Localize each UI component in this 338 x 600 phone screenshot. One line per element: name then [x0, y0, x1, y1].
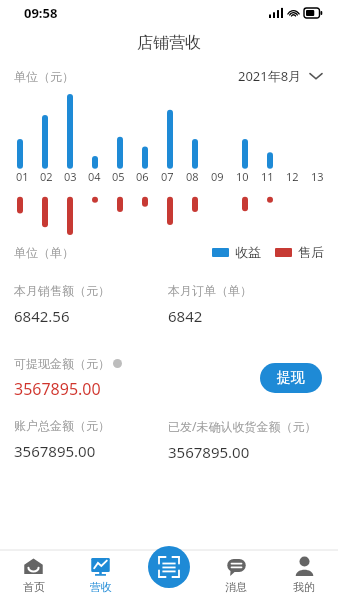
staticText: 收益 — [235, 244, 261, 260]
staticText: 04 — [88, 169, 101, 184]
staticText: 03 — [64, 169, 77, 184]
staticText: 售后 — [298, 244, 324, 260]
staticText: 3567895.00 — [168, 442, 250, 462]
staticText: 09 — [211, 169, 224, 184]
staticText: 消息 — [225, 580, 247, 594]
staticText: 07 — [161, 169, 174, 184]
staticText: 6842.56 — [14, 306, 70, 326]
staticText: 01 — [16, 169, 29, 184]
staticText: 已发/未确认收货金额（元） — [168, 418, 317, 434]
staticText: 06 — [136, 169, 149, 184]
staticText: 单位（单） — [14, 245, 74, 260]
staticText: 02 — [40, 169, 53, 184]
staticText: 首页 — [23, 580, 45, 594]
staticText: 08 — [186, 169, 199, 184]
button[interactable]: 营收 — [67, 550, 134, 600]
button[interactable]: 提现 — [260, 363, 322, 393]
staticText: 账户总金额（元） — [14, 418, 110, 433]
button[interactable]: 我的 — [270, 550, 338, 600]
staticText: 本月订单（单） — [168, 283, 252, 298]
button[interactable]: 扫一扫 — [148, 546, 190, 588]
staticText: 本月销售额（元） — [14, 283, 110, 298]
button[interactable]: 消息 — [202, 550, 270, 600]
staticText: 我的 — [293, 580, 315, 594]
button[interactable]: 说明 — [113, 359, 122, 368]
button[interactable]: 2021年8月 — [236, 63, 324, 89]
staticText: 12 — [286, 169, 299, 184]
staticText: 提现 — [277, 369, 305, 387]
staticText: 3567895.00 — [14, 441, 96, 461]
staticText: 2021年8月 — [238, 67, 302, 85]
staticText: 11 — [261, 169, 274, 184]
staticText: 13 — [311, 169, 324, 184]
staticText: 05 — [112, 169, 125, 184]
staticText: 可提现金额（元） — [14, 356, 110, 371]
staticText: 10 — [236, 169, 249, 184]
staticText: 3567895.00 — [14, 378, 101, 400]
button[interactable]: 首页 — [0, 550, 67, 600]
staticText: 单位（元） — [14, 69, 74, 84]
staticText: 6842 — [168, 306, 203, 326]
staticText: 店铺营收 — [137, 33, 201, 53]
staticText: 营收 — [90, 580, 112, 594]
staticText: 09:58 — [24, 4, 58, 22]
